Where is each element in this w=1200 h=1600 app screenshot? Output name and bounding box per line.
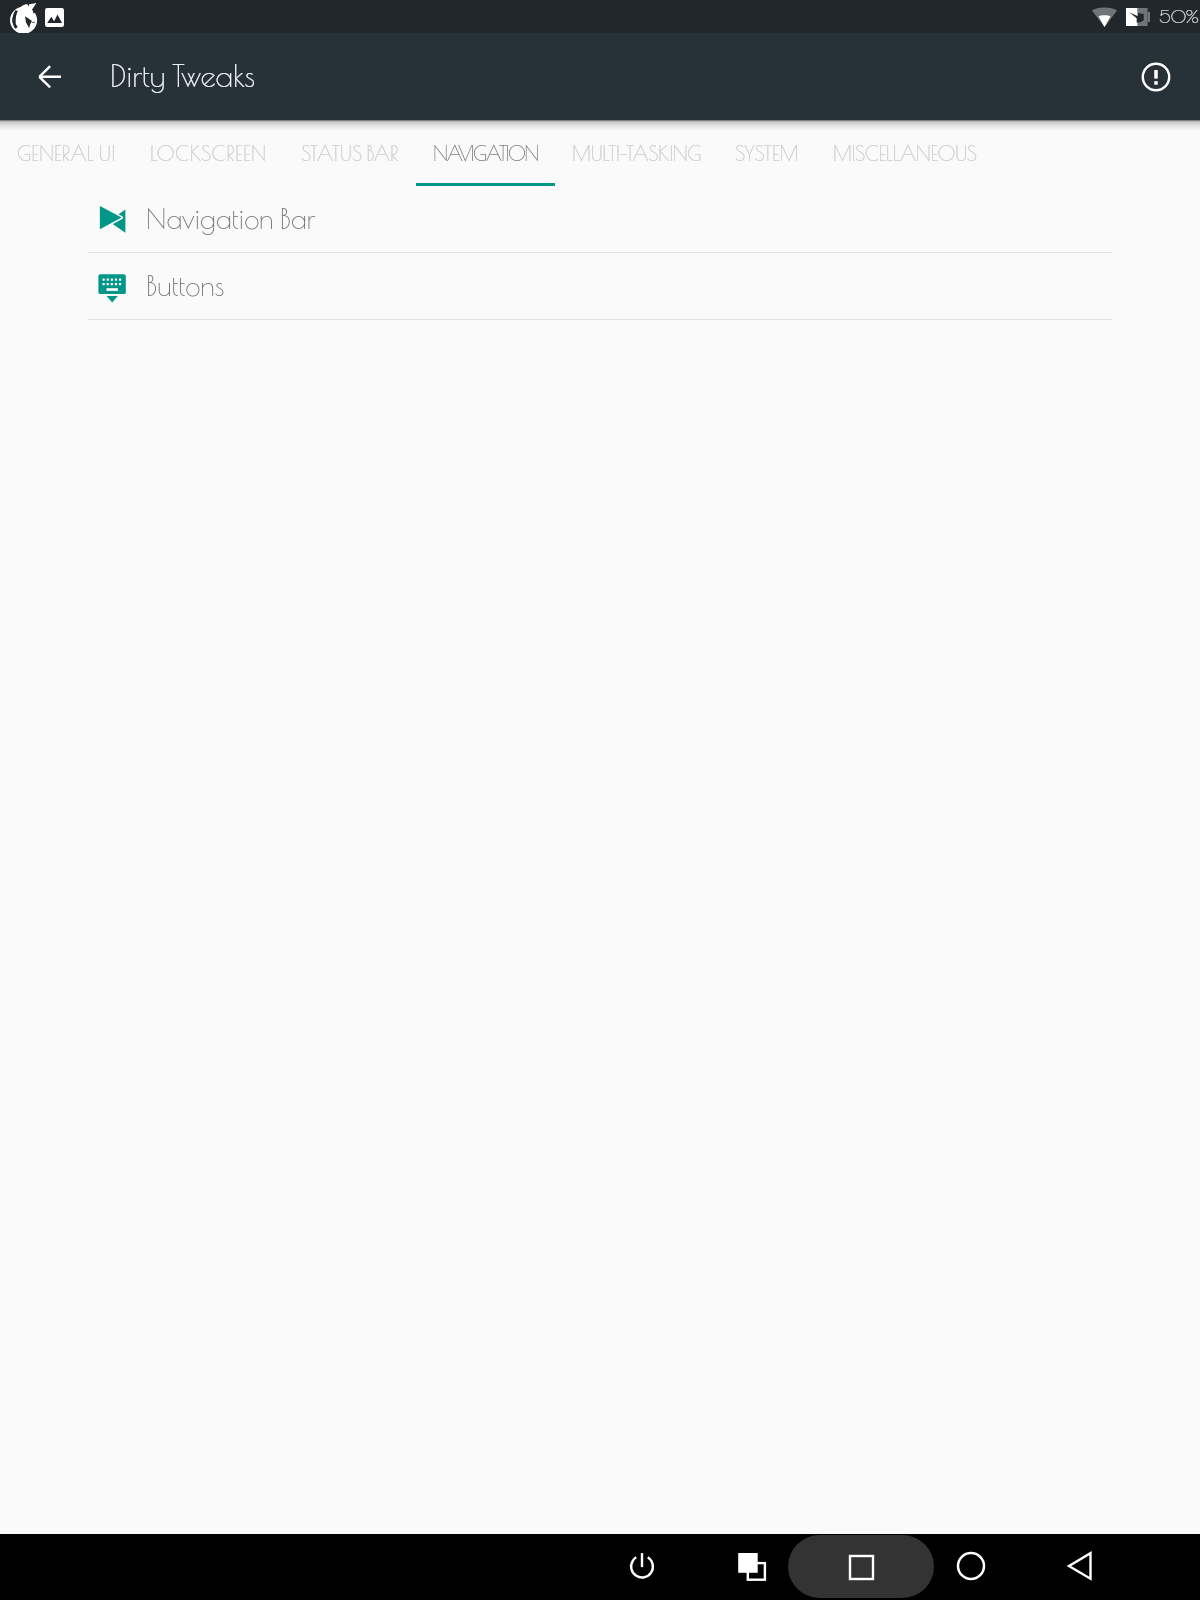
button[interactable]: NAVIGATION — [416, 120, 555, 186]
staticText: GENERAL UI — [17, 141, 116, 165]
button[interactable]: Buttons — [0, 253, 1200, 320]
button[interactable]: Power — [618, 1542, 666, 1590]
button[interactable]: Recent apps — [788, 1535, 934, 1598]
staticText: Navigation Bar — [146, 202, 316, 234]
staticText: STATUS BAR — [301, 141, 399, 165]
button[interactable]: GENERAL UI — [0, 120, 133, 186]
staticText: LOCKSCREEN — [150, 141, 267, 165]
button[interactable]: Navigate up — [25, 53, 73, 101]
button[interactable]: LOCKSCREEN — [133, 120, 284, 186]
staticText: Dirty Tweaks — [110, 58, 256, 94]
staticText: SYSTEM — [735, 141, 799, 165]
staticText: MISCELLANEOUS — [833, 141, 977, 165]
staticText: MULTI-TASKING — [572, 141, 701, 165]
staticText: 50% — [1159, 6, 1199, 27]
button[interactable]: STATUS BAR — [284, 120, 416, 186]
button[interactable]: MULTI-TASKING — [555, 120, 718, 186]
staticText: Buttons — [146, 269, 225, 301]
button[interactable]: MISCELLANEOUS — [816, 120, 994, 186]
staticText: NAVIGATION — [433, 141, 538, 165]
button[interactable]: Information — [1132, 53, 1180, 101]
button[interactable]: Back — [1056, 1542, 1104, 1590]
button[interactable]: SYSTEM — [718, 120, 816, 186]
button[interactable]: Split screen — [728, 1542, 776, 1590]
button[interactable]: Home — [947, 1542, 995, 1590]
button[interactable]: Navigation Bar — [0, 186, 1200, 253]
